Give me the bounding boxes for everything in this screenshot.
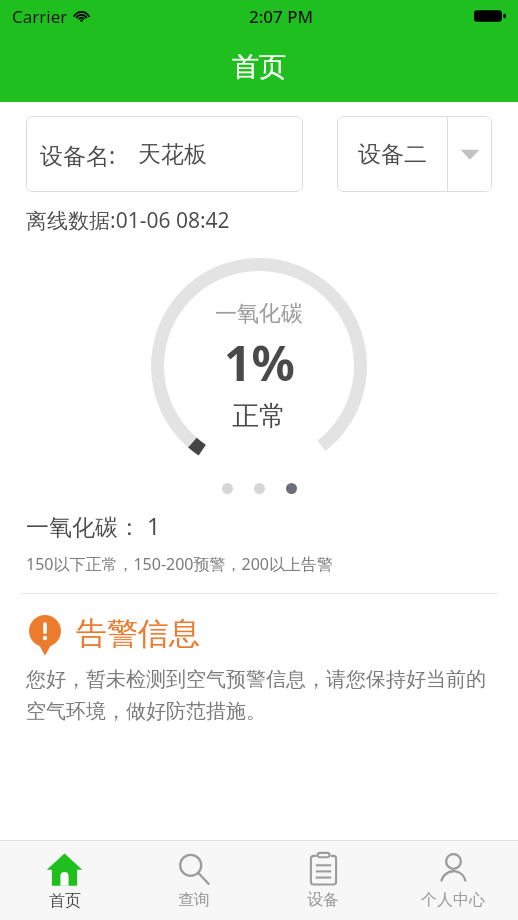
staticText: 正常 [232, 399, 286, 433]
staticText: 您好，暂未检测到空气预警信息，请您保持好当前的空气环境，做好防范措施。 [26, 667, 494, 724]
staticText: 一氧化碳 [215, 300, 303, 328]
button[interactable]: 查询 [129, 841, 258, 920]
staticText: 天花板 [138, 140, 207, 169]
button[interactable]: 设备 [258, 841, 388, 920]
button[interactable]: 选择设备 [337, 116, 492, 192]
staticText: 一氧化碳： 1 [26, 510, 161, 541]
staticText: 告警信息 [76, 614, 200, 653]
staticText: 150以下正常，150-200预警，200以上告警 [26, 553, 333, 575]
staticText: 首页 [232, 50, 286, 84]
staticText: 查询 [178, 890, 210, 910]
staticText: 首页 [49, 891, 81, 911]
staticText: 设备名: [40, 139, 116, 170]
staticText: 离线数据:01-06 08:42 [26, 206, 230, 235]
staticText: 个人中心 [421, 890, 485, 910]
button[interactable]: 设备名: [26, 116, 303, 192]
button[interactable]: 首页 [0, 841, 129, 920]
button[interactable]: 个人中心 [388, 841, 518, 920]
staticText: 设备 [307, 890, 339, 910]
staticText: 2:07 PM [249, 5, 314, 28]
staticText: Carrier [12, 5, 68, 28]
staticText: 设备二 [358, 140, 427, 169]
staticText: 1% [224, 330, 295, 395]
